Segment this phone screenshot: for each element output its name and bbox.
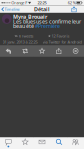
staticText: Orange F [11,0,27,5]
button[interactable]: Search [50,137,67,149]
staticText: 22:25 [37,0,46,5]
button[interactable]: Favorite [34,45,50,56]
staticText: Timeline [5,7,20,12]
button[interactable]: More [67,45,84,56]
staticText: Détail [34,6,50,13]
button[interactable]: Messages [34,137,50,149]
button[interactable]: Timeline [0,137,17,149]
button[interactable]: Share [50,45,67,56]
staticText: via Twitter for Android [42,39,81,45]
staticText: 4 Tweets [19,33,34,39]
button[interactable]: Reply [0,45,17,56]
staticText: Les bluesuses confirme leur [13,18,81,25]
staticText: 12 Favoris [52,33,70,39]
button[interactable]: Timeline [0,5,26,13]
button[interactable]: Mentions [17,137,34,149]
staticText: Myra_Brouair [13,13,47,20]
button[interactable]: Profile [67,137,84,149]
button[interactable]: Share [68,5,80,13]
button[interactable]: Retweet [17,45,34,56]
staticText: 62 % [68,0,76,5]
staticText: 31 janv. 2013 à 22:25 [2,39,37,45]
staticText: #Première [35,22,60,30]
staticText: beau été [13,22,35,30]
